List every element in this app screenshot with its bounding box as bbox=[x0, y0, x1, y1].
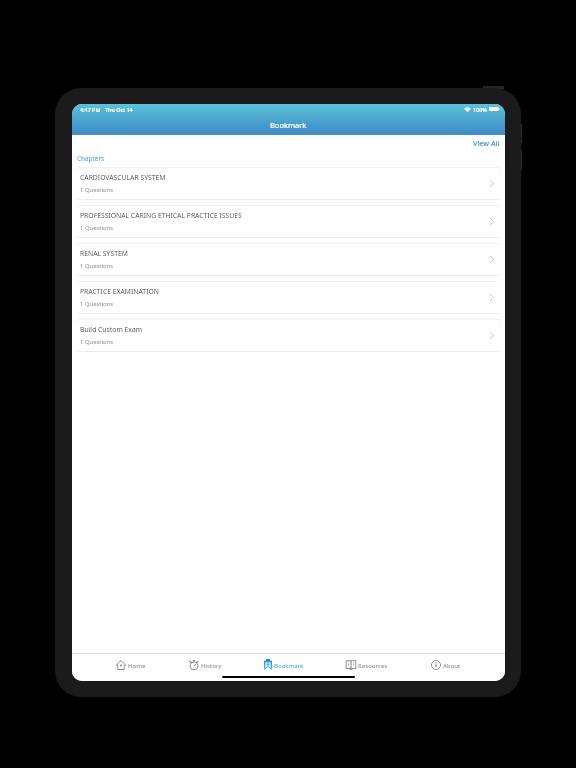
other: About bbox=[431, 660, 441, 670]
button[interactable]: Resources bbox=[344, 658, 390, 672]
staticText: PROFESSIONAL CARING ETHICAL PRACTICE ISS… bbox=[80, 211, 242, 220]
button[interactable]: CARDIOVASCULAR SYSTEM bbox=[76, 168, 501, 199]
button[interactable]: History bbox=[187, 658, 224, 672]
staticText: Build Custom Exam bbox=[80, 325, 143, 334]
staticText: 1 Questions bbox=[80, 262, 113, 270]
staticText: Bookmark bbox=[270, 120, 307, 130]
staticText: 1 Questions bbox=[80, 186, 113, 194]
staticText: RENAL SYSTEM bbox=[80, 249, 128, 258]
button[interactable]: Build Custom Exam bbox=[76, 320, 501, 351]
staticText: Resources bbox=[358, 661, 388, 669]
button[interactable]: About bbox=[429, 658, 463, 672]
staticText: 1 Questions bbox=[80, 300, 113, 308]
other: Home bbox=[116, 660, 126, 670]
staticText: 1 Questions bbox=[80, 338, 113, 346]
staticText: 4:47 PM bbox=[80, 106, 101, 113]
staticText: Chapters bbox=[77, 154, 105, 163]
button[interactable]: Home bbox=[114, 658, 148, 672]
staticText: 1 Questions bbox=[80, 224, 113, 232]
staticText: PRACTICE EXAMINATION bbox=[80, 287, 159, 296]
button[interactable]: PRACTICE EXAMINATION bbox=[76, 282, 501, 313]
staticText: CARDIOVASCULAR SYSTEM bbox=[80, 173, 166, 182]
staticText: Bookmark bbox=[274, 661, 304, 669]
staticText: About bbox=[443, 661, 461, 669]
staticText: 100% bbox=[473, 106, 487, 113]
other: Resources bbox=[346, 660, 356, 670]
staticText: History bbox=[201, 661, 222, 669]
button[interactable]: PROFESSIONAL CARING ETHICAL PRACTICE ISS… bbox=[76, 206, 501, 237]
staticText: Thu Oct 14 bbox=[105, 106, 133, 113]
staticText: View All bbox=[473, 138, 500, 148]
button[interactable]: RENAL SYSTEM bbox=[76, 244, 501, 275]
button[interactable]: View All bbox=[473, 135, 504, 148]
button[interactable]: Bookmark bbox=[262, 657, 306, 672]
staticText: Home bbox=[128, 661, 146, 669]
other: Bookmark bbox=[264, 659, 272, 670]
other: History bbox=[189, 660, 199, 670]
